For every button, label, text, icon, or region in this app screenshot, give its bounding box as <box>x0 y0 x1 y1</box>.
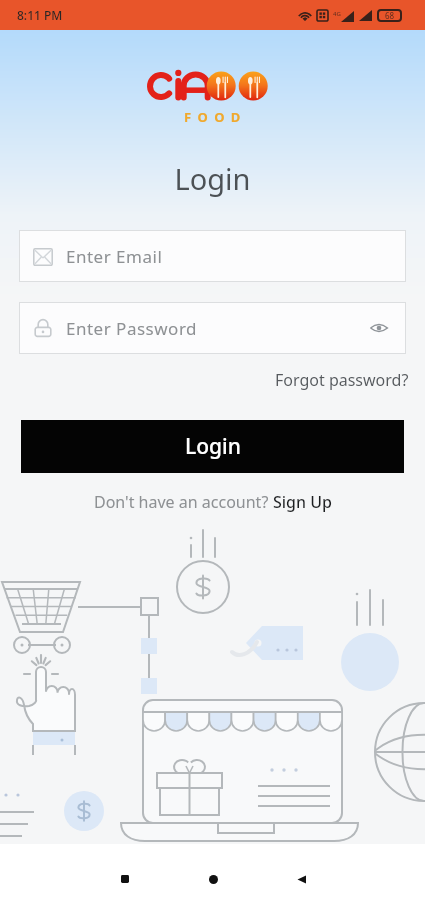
staticText: 4G <box>333 10 341 18</box>
staticText: Login <box>0 159 425 198</box>
button[interactable]: Login <box>21 420 404 473</box>
button[interactable]: Back <box>278 858 324 900</box>
button[interactable]: Recents <box>102 858 148 900</box>
staticText: Enter Password <box>66 317 198 340</box>
button[interactable]: Sign Up <box>273 491 332 513</box>
staticText: Don't have an account? <box>94 491 273 513</box>
button[interactable]: Enter Password <box>19 302 406 354</box>
staticText: 68 <box>385 10 395 21</box>
button[interactable]: Forgot password? <box>275 369 409 391</box>
button[interactable]: Home <box>190 858 236 900</box>
staticText: Enter Email <box>66 245 163 268</box>
staticText: Login <box>185 432 241 461</box>
button[interactable]: Show password <box>366 315 392 341</box>
staticText: 8:11 PM <box>17 7 63 23</box>
staticText: F O O D <box>184 108 242 122</box>
button[interactable]: Enter Email <box>19 230 406 282</box>
